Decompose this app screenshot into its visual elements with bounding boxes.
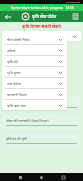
other: Back xyxy=(4,13,12,21)
staticText: कृषि ऋण सेवा xyxy=(7,103,58,108)
staticText: कृषि यंत्र की सूची xyxy=(6,136,27,141)
staticText: जल प्रबंधन xyxy=(7,81,58,86)
button[interactable]: Home xyxy=(40,176,43,179)
staticText: Tap to return to the call in progress 14… xyxy=(10,6,74,10)
staticText: कृषि यंत्र xyxy=(7,59,58,64)
staticText: कृषि विभाग संबंधी सेवाएं xyxy=(0,24,83,29)
staticText: कृषि सेवा पोर्टल xyxy=(32,14,57,20)
button[interactable]: कृषि यंत्र की सूची xyxy=(3,133,80,147)
button[interactable]: Back xyxy=(3,12,13,22)
staticText: कृषि विभाग संबंधी सेवाएं xyxy=(7,34,72,39)
button[interactable]: कृषि विभाग संबंधी सेवाएं xyxy=(2,31,81,41)
button[interactable]: उर्वरक xyxy=(2,45,67,55)
button[interactable]: Menu xyxy=(71,12,80,21)
staticText: भूमि सुधार xyxy=(7,70,58,75)
staticText: उर्वरक xyxy=(7,48,58,53)
other: Menu xyxy=(71,12,80,21)
staticText: बीज संबंधी निवेश xyxy=(7,37,58,42)
staticText: बागवानी विभाग xyxy=(7,92,58,97)
button[interactable]: कृषि यंत्र xyxy=(2,56,67,66)
button[interactable]: बीज संबंधी निवेश xyxy=(2,34,67,44)
button[interactable]: मौसम की जानकारी (मौसम विभाग) xyxy=(3,115,80,129)
button[interactable]: बागवानी विभाग xyxy=(2,89,67,99)
button[interactable]: कृषि ऋण सेवा xyxy=(2,100,67,110)
button[interactable]: उपज का बाजार आंकड़ा देखें xyxy=(3,97,80,111)
button[interactable]: Tap to return to the call in progress 14… xyxy=(0,4,83,11)
staticText: उपज का बाजार आंकड़ा देखें xyxy=(6,100,41,105)
button[interactable]: Recents xyxy=(62,176,65,179)
staticText: मौसम की जानकारी (मौसम विभाग) xyxy=(6,118,49,123)
button[interactable]: जल प्रबंधन xyxy=(2,78,67,88)
button[interactable]: भूमि सुधार xyxy=(2,67,67,77)
